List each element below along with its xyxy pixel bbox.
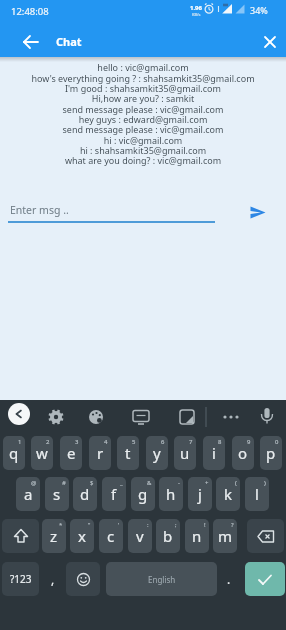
- button[interactable]: [255, 405, 279, 429]
- staticText: t: [125, 443, 131, 463]
- staticText: how's everything going ? : shahsamkit35@…: [0, 72, 286, 84]
- staticText: f: [111, 484, 117, 504]
- button[interactable]: k: [216, 477, 240, 511]
- staticText: English: [148, 574, 176, 585]
- staticText: ': [118, 521, 120, 529]
- staticText: send message please : vic@gmail.com: [0, 103, 286, 115]
- button[interactable]: ?123: [2, 562, 39, 596]
- staticText: w: [36, 443, 48, 463]
- staticText: :: [147, 521, 149, 529]
- staticText: v: [136, 526, 144, 546]
- staticText: 9: [247, 438, 251, 446]
- button[interactable]: .: [219, 562, 239, 596]
- button[interactable]: s: [45, 477, 69, 511]
- button[interactable]: [264, 36, 276, 48]
- button[interactable]: h: [159, 477, 183, 511]
- staticText: *: [59, 521, 63, 529]
- button[interactable]: [219, 405, 243, 429]
- button[interactable]: [44, 405, 68, 429]
- button[interactable]: r: [89, 436, 111, 470]
- staticText: 5: [132, 438, 136, 446]
- button[interactable]: n: [185, 519, 209, 553]
- staticText: a: [24, 484, 33, 504]
- button[interactable]: [250, 205, 266, 220]
- staticText: q: [9, 443, 19, 463]
- staticText: ?: [231, 521, 234, 529]
- button[interactable]: [84, 405, 108, 429]
- button[interactable]: p: [260, 436, 282, 470]
- staticText: (: [235, 479, 237, 487]
- staticText: r: [97, 443, 104, 463]
- staticText: 12:48:08: [11, 5, 49, 18]
- staticText: what are you doing? : vic@gmail.com: [0, 154, 286, 166]
- button[interactable]: [8, 403, 30, 425]
- button[interactable]: [66, 562, 100, 596]
- button[interactable]: v: [128, 519, 152, 553]
- button[interactable]: a: [16, 477, 40, 511]
- button[interactable]: ,: [43, 562, 63, 596]
- button[interactable]: f: [102, 477, 126, 511]
- button[interactable]: w: [31, 436, 53, 470]
- button[interactable]: e: [60, 436, 82, 470]
- staticText: k: [224, 484, 233, 504]
- staticText: ?123: [10, 572, 32, 586]
- staticText: -: [178, 479, 180, 487]
- button[interactable]: j: [188, 477, 212, 511]
- staticText: @: [31, 479, 37, 487]
- button[interactable]: [175, 405, 199, 429]
- staticText: h: [166, 484, 176, 504]
- button[interactable]: x: [70, 519, 94, 553]
- staticText: s: [53, 484, 61, 504]
- button[interactable]: z: [42, 519, 66, 553]
- staticText: 1: [18, 438, 22, 446]
- staticText: 34%: [250, 4, 268, 16]
- staticText: m: [218, 526, 233, 546]
- staticText: 8: [218, 438, 222, 446]
- staticText: Enter msg ..: [10, 203, 69, 217]
- staticText: Chat: [56, 34, 82, 49]
- button[interactable]: English: [106, 562, 217, 596]
- button[interactable]: o: [232, 436, 254, 470]
- staticText: g: [138, 484, 148, 504]
- staticText: 6: [161, 438, 165, 446]
- staticText: hello : vic@gmail.com: [0, 61, 286, 73]
- staticText: p: [266, 443, 276, 463]
- staticText: send message please : vic@gmail.com: [0, 123, 286, 135]
- button[interactable]: [23, 35, 39, 49]
- staticText: d: [80, 484, 90, 504]
- staticText: ): [264, 479, 266, 487]
- staticText: e: [67, 443, 76, 463]
- button[interactable]: [245, 562, 285, 596]
- staticText: #: [62, 479, 66, 487]
- button[interactable]: g: [131, 477, 155, 511]
- button[interactable]: c: [99, 519, 123, 553]
- button[interactable]: i: [203, 436, 225, 470]
- staticText: +: [205, 479, 209, 487]
- staticText: ": [88, 521, 91, 529]
- staticText: j: [198, 484, 202, 504]
- staticText: I'm good : shahsamkit35@gmail.com: [0, 82, 286, 94]
- button[interactable]: [247, 519, 284, 553]
- staticText: 0: [275, 438, 279, 446]
- button[interactable]: d: [73, 477, 97, 511]
- staticText: i: [212, 443, 216, 463]
- button[interactable]: [129, 405, 153, 429]
- button[interactable]: l: [245, 477, 269, 511]
- staticText: c: [107, 526, 115, 546]
- staticText: b: [163, 526, 173, 546]
- staticText: n: [192, 526, 202, 546]
- button[interactable]: u: [174, 436, 196, 470]
- staticText: 4: [104, 438, 108, 446]
- staticText: 3: [75, 438, 79, 446]
- button[interactable]: m: [213, 519, 237, 553]
- staticText: .: [227, 571, 231, 587]
- staticText: l: [255, 484, 259, 504]
- staticText: KB/s: [192, 12, 201, 17]
- button[interactable]: q: [3, 436, 25, 470]
- button[interactable]: b: [156, 519, 180, 553]
- button[interactable]: y: [146, 436, 168, 470]
- staticText: 7: [189, 438, 193, 446]
- button[interactable]: t: [117, 436, 139, 470]
- button[interactable]: [2, 519, 39, 553]
